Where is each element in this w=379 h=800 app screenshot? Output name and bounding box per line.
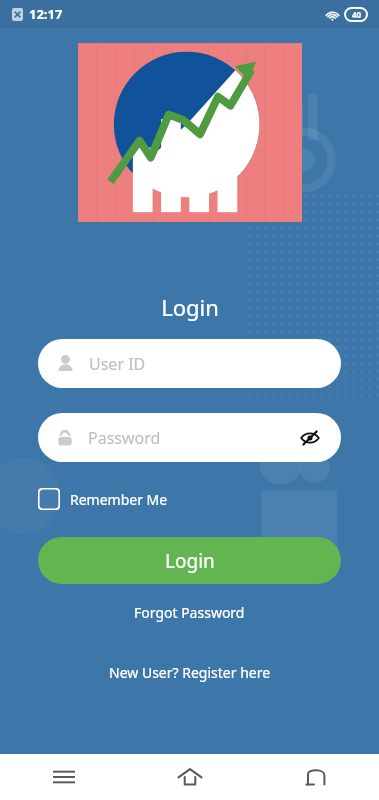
button[interactable]: User ID: [38, 339, 341, 388]
button[interactable]: Login: [38, 537, 341, 584]
staticText: Password: [88, 427, 297, 449]
staticText: Login: [161, 292, 219, 322]
staticText: 40: [352, 9, 362, 20]
button[interactable]: Show password: [297, 425, 323, 451]
staticText: Login: [165, 548, 215, 574]
staticText: 12:17: [29, 5, 63, 23]
button[interactable]: Remember Me: [38, 484, 168, 514]
button[interactable]: New User? Register here: [95, 656, 285, 689]
button[interactable]: Back: [253, 754, 379, 800]
staticText: Forgot Password: [134, 603, 245, 622]
button[interactable]: Home: [127, 754, 253, 800]
button[interactable]: Forgot Password: [120, 596, 259, 629]
staticText: User ID: [89, 353, 146, 375]
staticText: New User? Register here: [109, 663, 271, 682]
button[interactable]: Password: [38, 413, 341, 462]
button[interactable]: Recent apps: [0, 754, 127, 800]
staticText: Remember Me: [70, 490, 168, 509]
